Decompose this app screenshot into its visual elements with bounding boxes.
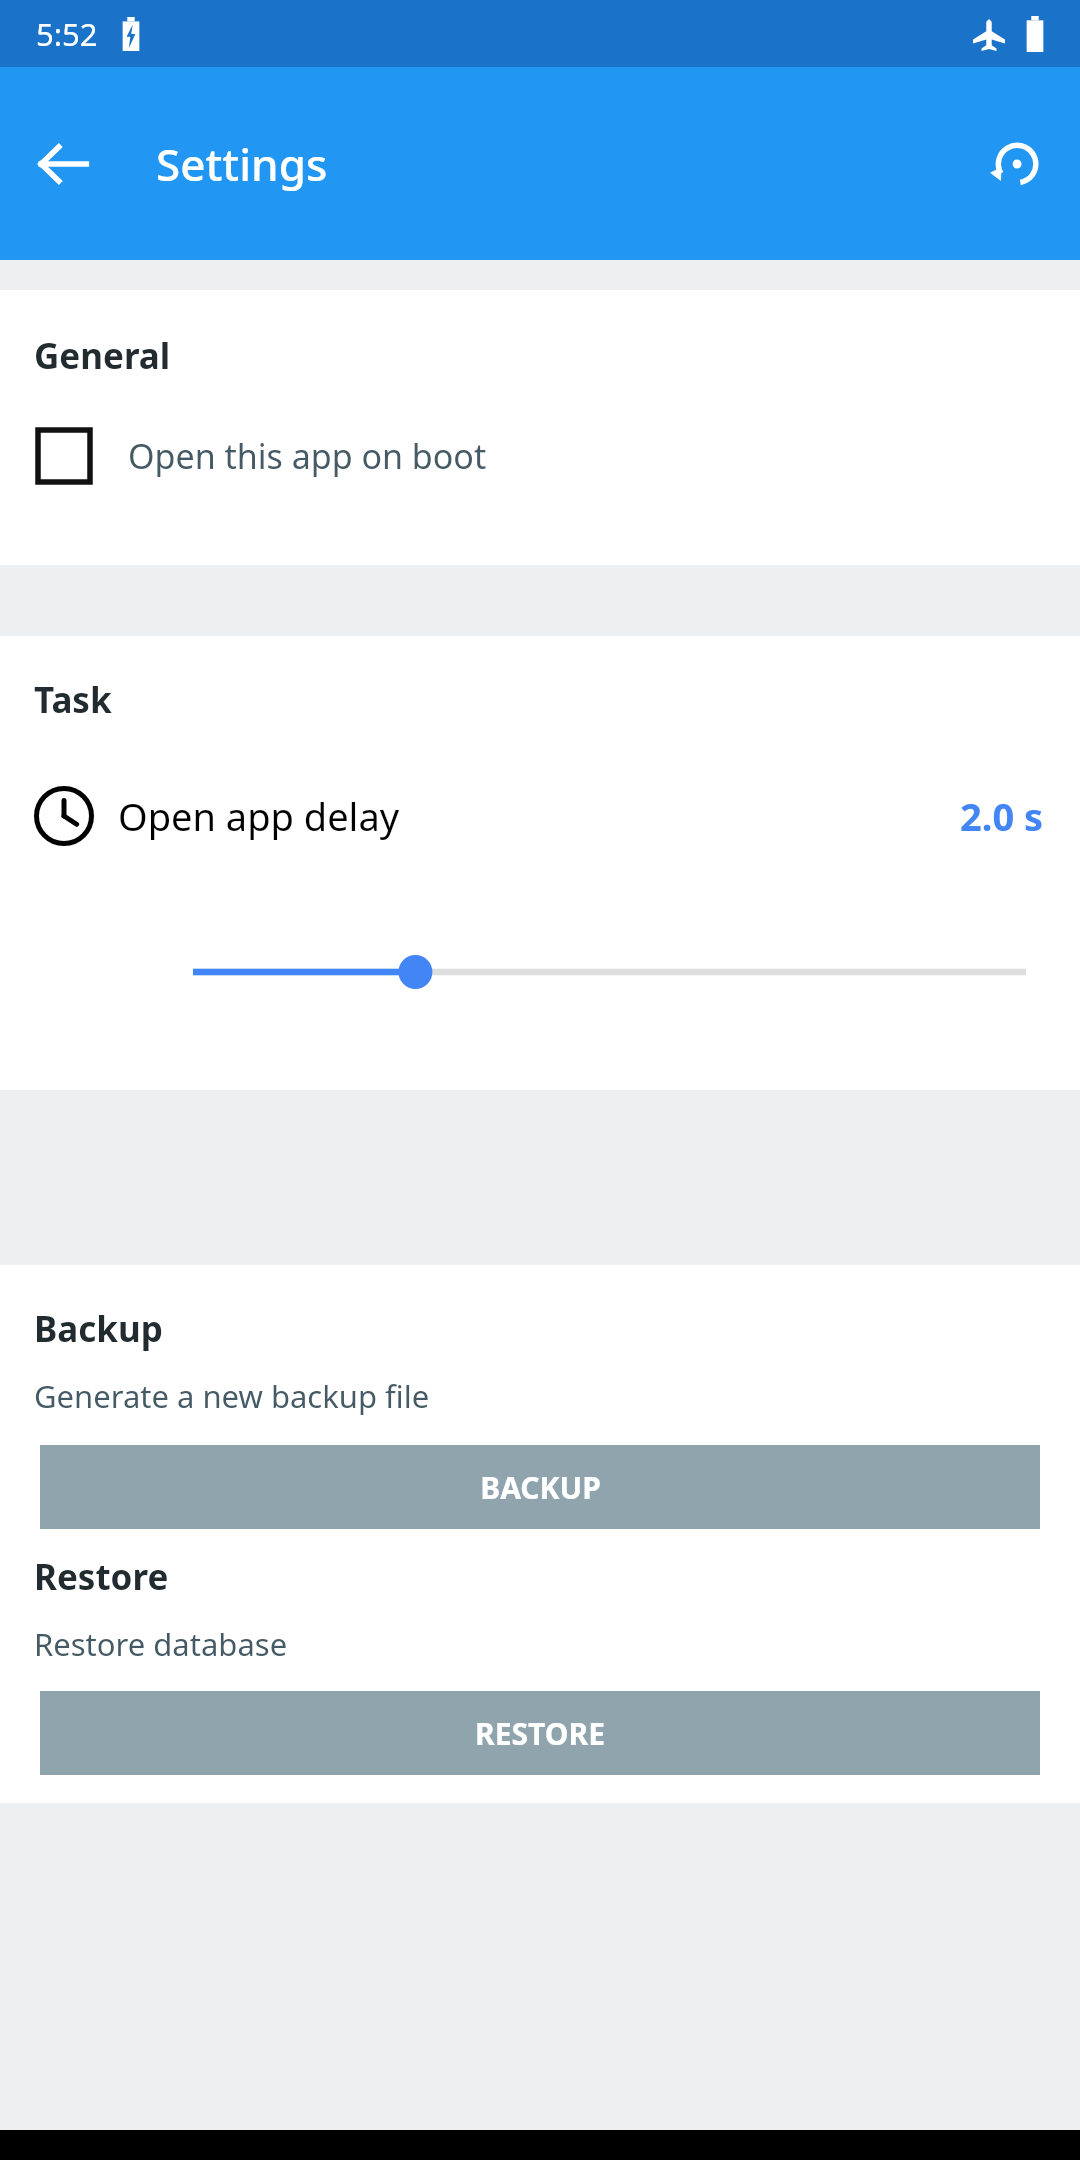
staticText: RESTORE <box>475 1713 605 1754</box>
staticText: Generate a new backup file <box>34 1375 430 1417</box>
staticText: Restore database <box>34 1623 288 1665</box>
staticText: General <box>34 332 171 380</box>
staticText: 2.0 s <box>960 790 1044 842</box>
button[interactable]: Open app delay <box>0 774 1080 858</box>
button[interactable] <box>0 942 1080 1002</box>
staticText: BACKUP <box>480 1467 601 1508</box>
staticText: Task <box>34 676 112 724</box>
button[interactable]: Restore defaults <box>970 119 1060 209</box>
staticText: Settings <box>156 134 328 194</box>
button[interactable]: BACKUP <box>40 1445 1040 1529</box>
button[interactable]: Back <box>18 119 108 209</box>
staticText: Open this app on boot <box>128 433 487 479</box>
staticText: Restore <box>34 1553 169 1601</box>
staticText: Backup <box>34 1305 163 1353</box>
button[interactable]: RESTORE <box>40 1691 1040 1775</box>
staticText: 5:52 <box>36 13 98 55</box>
staticText: Open app delay <box>118 790 400 842</box>
button[interactable]: Open this app on boot <box>0 416 1080 496</box>
